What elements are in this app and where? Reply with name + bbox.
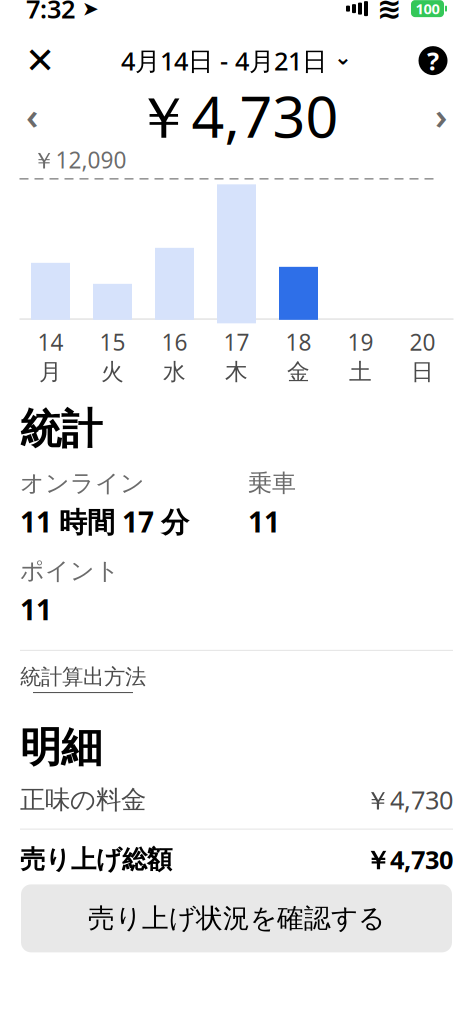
staticText: ￥12,090 xyxy=(32,145,126,175)
staticText: 17 xyxy=(223,327,249,357)
staticText: 14 xyxy=(37,327,63,357)
staticText: 乗車 xyxy=(248,468,296,498)
staticText: ￥4,730 xyxy=(365,843,453,876)
button[interactable]: ヘルプ xyxy=(409,37,457,85)
button[interactable]: 売り上げ状況を確認する xyxy=(21,884,452,952)
staticText: 売り上げ状況を確認する xyxy=(88,902,385,935)
staticText: 15 xyxy=(99,327,125,357)
staticText: ￥4,730 xyxy=(365,783,453,817)
staticText: オンライン xyxy=(20,468,145,498)
button[interactable]: 統計算出方法 xyxy=(20,651,453,706)
staticText: ⌄ xyxy=(334,45,352,69)
staticText: ‹ xyxy=(26,92,38,139)
staticText: 100 xyxy=(415,0,439,18)
staticText: 月 xyxy=(39,358,62,386)
staticText: ➤ xyxy=(75,0,99,20)
staticText: 木 xyxy=(225,358,248,386)
staticText: 19 xyxy=(347,327,373,357)
staticText: 11 xyxy=(248,503,280,540)
staticText: ￥4,730 xyxy=(134,77,338,154)
button[interactable]: 前の週 xyxy=(10,94,54,138)
staticText: 水 xyxy=(163,358,186,386)
staticText: › xyxy=(435,92,447,139)
staticText: 7:32 xyxy=(26,0,75,25)
staticText: ≋ xyxy=(377,0,402,25)
staticText: 統計算出方法 xyxy=(20,664,146,690)
staticText: ✕ xyxy=(25,40,55,81)
staticText: 正味の料金 xyxy=(20,784,146,815)
staticText: 11 時間 17 分 xyxy=(20,503,189,540)
button[interactable]: 次の週 xyxy=(419,94,463,138)
staticText: 18 xyxy=(285,327,311,357)
staticText: 火 xyxy=(101,358,124,386)
staticText: 20 xyxy=(409,327,435,357)
staticText: ? xyxy=(427,44,439,77)
staticText: 明細 xyxy=(20,722,102,773)
staticText: 16 xyxy=(161,327,187,357)
staticText: 土 xyxy=(349,358,372,386)
staticText: 4月14日 - 4月21日 xyxy=(121,44,327,77)
staticText: 11 xyxy=(20,591,52,628)
staticText: 売り上げ総額 xyxy=(20,844,172,875)
staticText: ポイント xyxy=(20,556,120,586)
staticText: 金 xyxy=(287,358,310,386)
staticText: 統計 xyxy=(20,404,102,455)
button[interactable]: 閉じる xyxy=(16,37,64,85)
staticText: 日 xyxy=(411,358,434,386)
